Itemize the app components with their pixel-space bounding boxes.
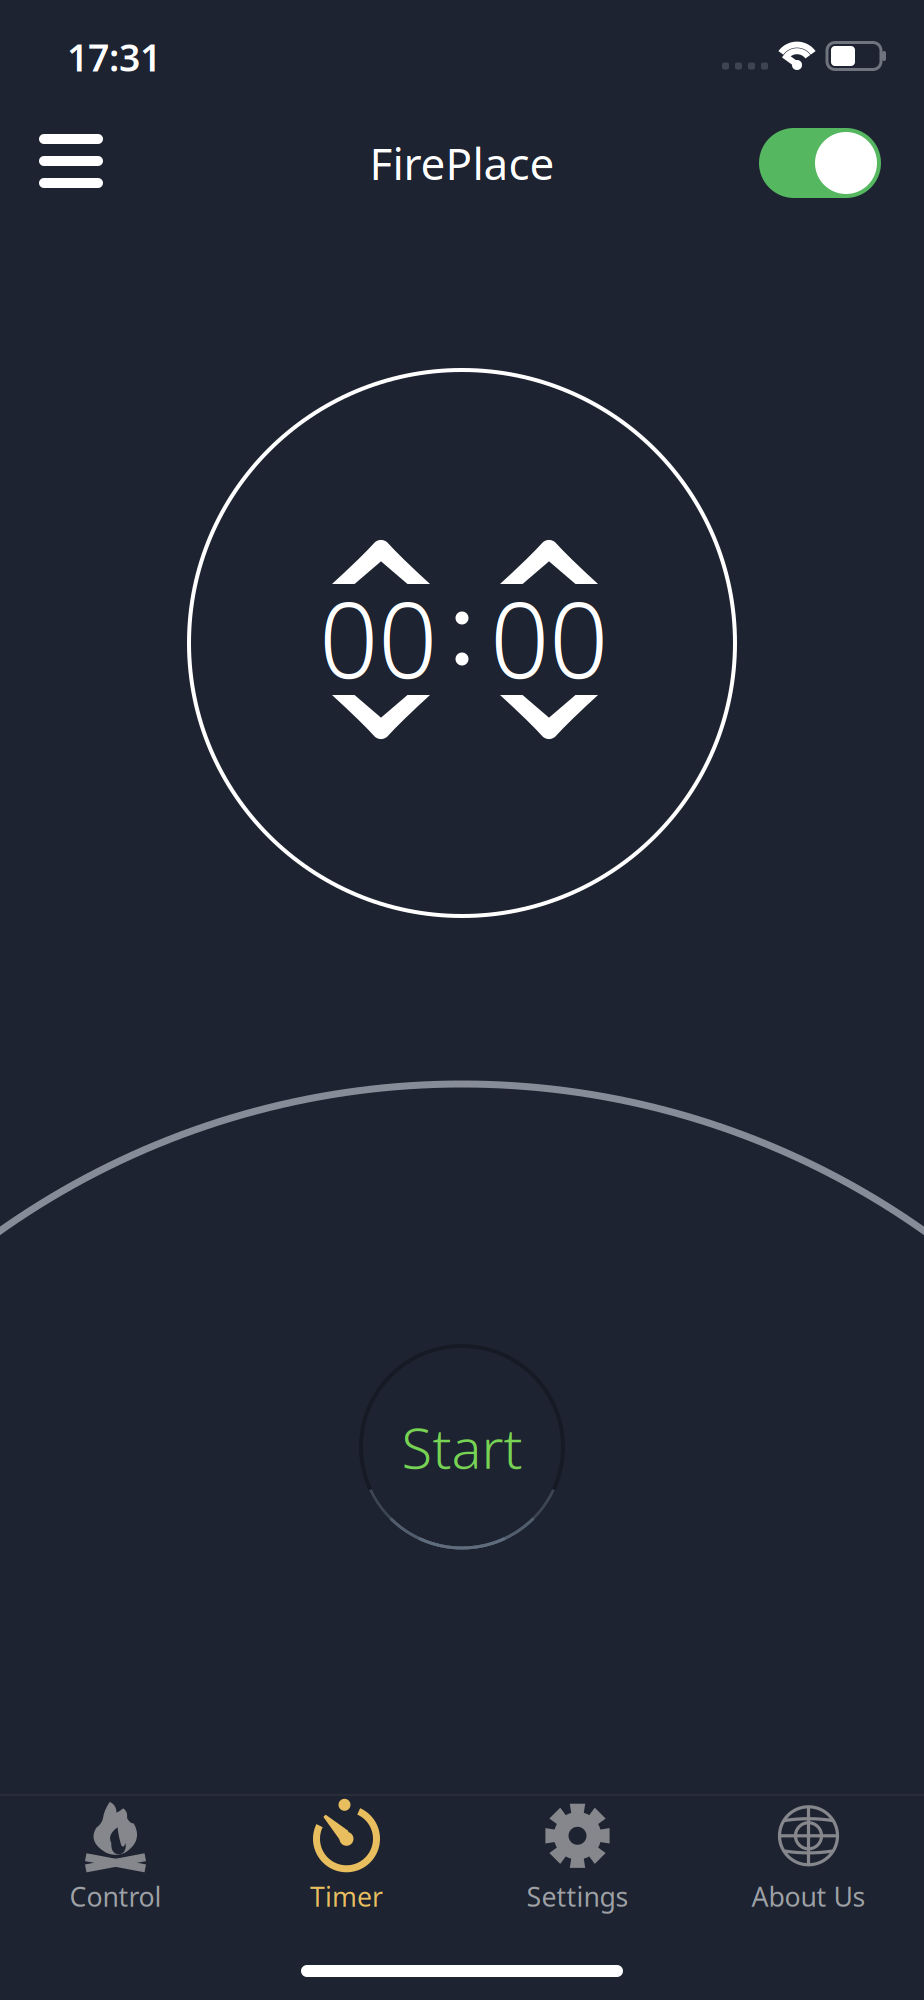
button[interactable]: Decrease seconds bbox=[490, 685, 608, 747]
button[interactable]: Settings bbox=[462, 1800, 693, 1914]
staticText: 00 bbox=[319, 569, 437, 707]
button[interactable]: Increase seconds bbox=[490, 532, 608, 594]
staticText: Timer bbox=[310, 1879, 383, 1914]
button[interactable]: About Us bbox=[693, 1800, 924, 1914]
button[interactable]: Start bbox=[359, 1344, 565, 1550]
staticText: FirePlace bbox=[369, 134, 554, 192]
staticText: Start bbox=[401, 1410, 522, 1484]
staticText: 17:31 bbox=[67, 32, 161, 82]
button[interactable]: Power bbox=[759, 128, 881, 198]
staticText: Settings bbox=[526, 1879, 628, 1914]
staticText: About Us bbox=[751, 1879, 865, 1914]
button[interactable]: Increase minutes bbox=[322, 532, 440, 594]
button[interactable]: Menu bbox=[31, 126, 111, 196]
staticText: 00 bbox=[490, 569, 608, 707]
button[interactable]: Control bbox=[0, 1800, 231, 1914]
button[interactable]: Timer bbox=[231, 1800, 462, 1914]
staticText: Control bbox=[69, 1879, 161, 1914]
button[interactable]: Decrease minutes bbox=[322, 685, 440, 747]
